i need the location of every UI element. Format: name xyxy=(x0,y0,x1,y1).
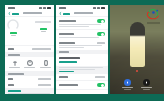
button[interactable] xyxy=(5,82,54,88)
button[interactable] xyxy=(56,40,108,50)
button[interactable]: Back xyxy=(8,12,19,15)
button[interactable]: Toggle xyxy=(97,19,105,23)
button[interactable]: Settings xyxy=(143,79,150,86)
button[interactable]: Toggle xyxy=(56,30,108,40)
button[interactable]: Compatibility xyxy=(39,59,52,69)
button[interactable] xyxy=(56,54,108,66)
button[interactable] xyxy=(5,46,54,52)
button[interactable]: Back xyxy=(59,12,70,15)
button[interactable]: Auto connection xyxy=(8,59,21,69)
button[interactable]: Toggle xyxy=(97,32,105,36)
button[interactable]: Timer xyxy=(23,59,36,69)
button[interactable] xyxy=(5,76,54,82)
button[interactable]: Toggle xyxy=(56,81,108,89)
button[interactable] xyxy=(56,74,108,80)
button[interactable]: Toggle xyxy=(97,83,105,87)
button[interactable]: Toggle xyxy=(56,17,108,29)
button[interactable]: Light mode xyxy=(124,79,131,86)
